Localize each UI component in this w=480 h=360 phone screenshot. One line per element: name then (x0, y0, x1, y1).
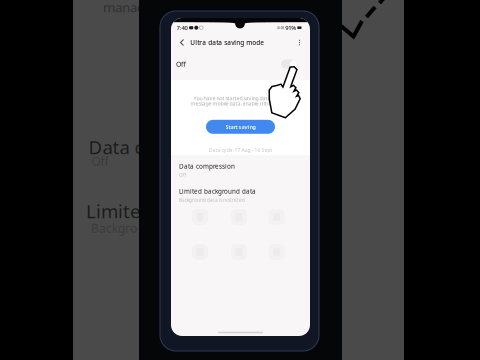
staticText: Limited (86, 198, 152, 224)
staticText: Off (179, 172, 186, 178)
staticText: Off (91, 153, 108, 169)
button[interactable]: Ultra data saving mode (281, 59, 305, 68)
staticText: manag (103, 0, 145, 16)
staticText: You have not started saving data yet. To (193, 95, 287, 102)
staticText: message mobile data, enable Ultra data s… (190, 100, 290, 107)
staticText: 91% (285, 24, 296, 32)
staticText: Data compression (179, 162, 235, 170)
staticText: Limited background data (179, 187, 256, 195)
staticText: Ultra data saving mode (190, 38, 264, 47)
staticText: Data c (88, 134, 143, 160)
staticText: Off (176, 59, 186, 69)
button[interactable]: More options (294, 36, 305, 49)
staticText: Backgro (91, 220, 137, 236)
staticText: Background data is restricted (179, 197, 245, 203)
staticText: Data cycle: 17 Aug - 16 Sept (208, 147, 272, 153)
staticText: 7:40 (176, 24, 187, 32)
button[interactable]: Limited background data (176, 184, 308, 206)
staticText: Start saving (225, 123, 255, 130)
button[interactable]: Back (176, 36, 188, 48)
button[interactable]: Start saving (206, 120, 275, 134)
button[interactable]: Data compression (176, 159, 308, 181)
